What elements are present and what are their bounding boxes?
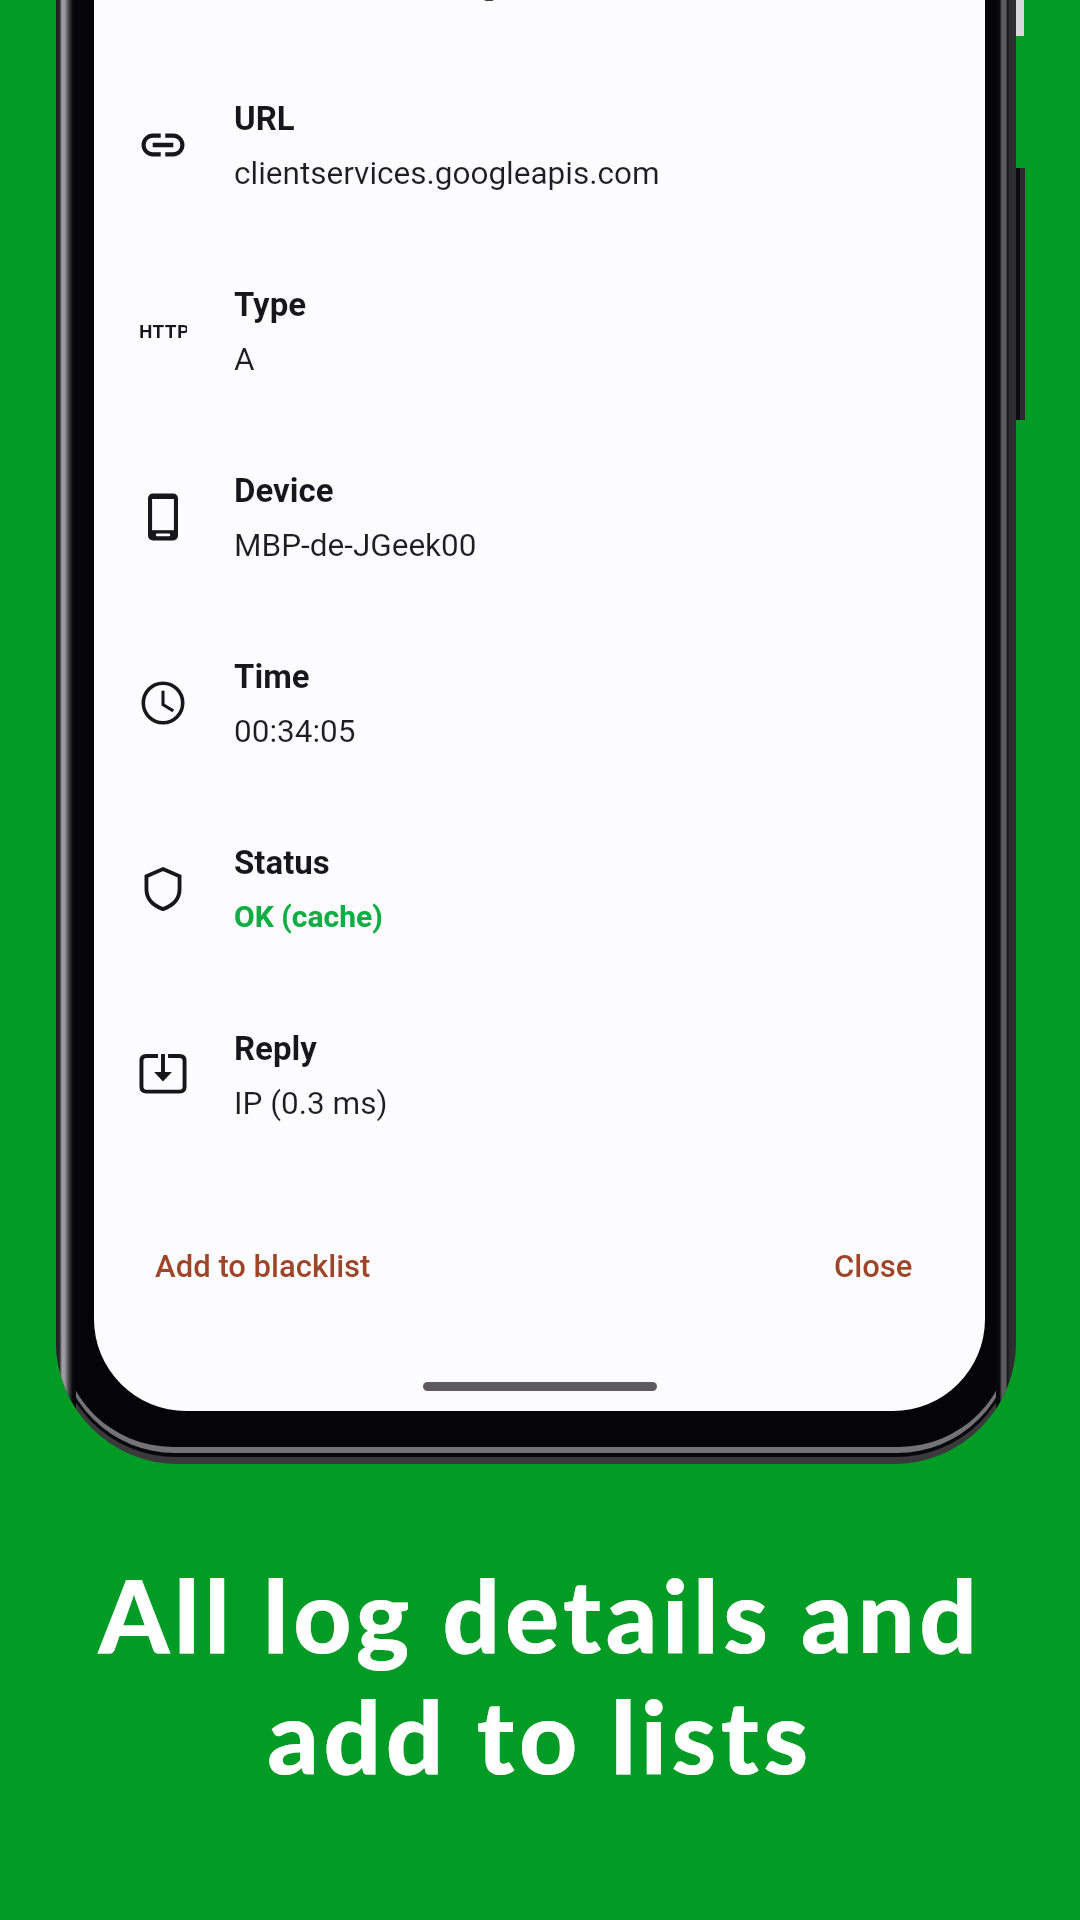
staticText: Close — [834, 1248, 913, 1284]
button[interactable]: Time — [94, 616, 985, 766]
other: Device — [139, 493, 187, 541]
staticText: OK (cache) — [234, 899, 383, 934]
staticText: MBP-de-JGeek00 — [234, 527, 477, 564]
staticText: All log details and — [98, 1553, 982, 1674]
staticText: Add to blacklist — [155, 1248, 371, 1284]
other: Time — [139, 679, 187, 727]
other: URL — [139, 121, 187, 169]
button[interactable]: Add to blacklist — [141, 1236, 385, 1296]
button[interactable]: Status — [94, 802, 985, 952]
button[interactable]: Device — [94, 430, 985, 580]
staticText: Type — [234, 285, 307, 324]
staticText: clientservices.googleapis.com — [234, 155, 660, 192]
staticText: Device — [234, 471, 334, 510]
staticText: HTTP — [139, 320, 187, 342]
button[interactable]: URL — [94, 58, 985, 208]
staticText: A — [234, 341, 255, 378]
staticText: URL — [234, 99, 295, 138]
button[interactable]: HTTP — [94, 244, 985, 394]
other: Reply — [139, 1051, 187, 1099]
staticText: add to lists — [267, 1674, 813, 1795]
staticText: 00:34:05 — [234, 713, 356, 750]
staticText: Reply — [234, 1029, 317, 1068]
staticText: Time — [234, 657, 310, 696]
button[interactable]: Reply — [94, 988, 985, 1138]
button[interactable]: Close — [820, 1236, 927, 1296]
other: Status — [139, 865, 187, 913]
staticText: Status — [234, 843, 330, 882]
staticText: IP (0.3 ms) — [234, 1085, 388, 1122]
